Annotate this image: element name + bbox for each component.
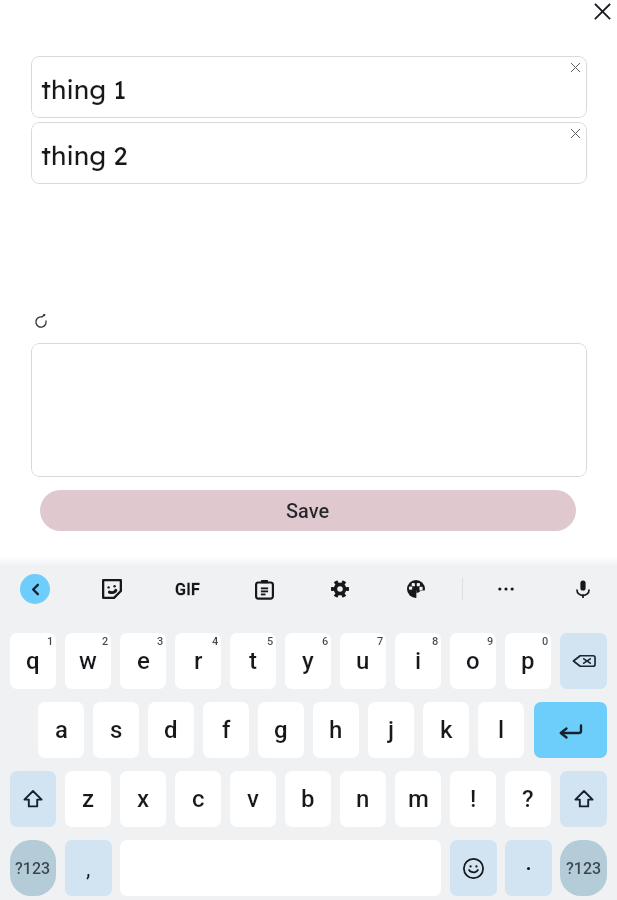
button[interactable]: y bbox=[285, 633, 331, 689]
staticText: ! bbox=[470, 785, 477, 813]
button[interactable]: Settings bbox=[322, 571, 358, 607]
staticText: e bbox=[137, 647, 150, 675]
button[interactable]: q bbox=[10, 633, 56, 689]
staticText: x bbox=[137, 785, 150, 813]
button[interactable]: i bbox=[395, 633, 441, 689]
button[interactable]: Back bbox=[20, 574, 50, 604]
button[interactable]: o bbox=[450, 633, 496, 689]
button[interactable]: , bbox=[65, 840, 112, 896]
button[interactable]: Emoji bbox=[450, 840, 497, 896]
staticText: 1 bbox=[47, 635, 54, 648]
button[interactable]: k bbox=[423, 702, 469, 758]
staticText: 5 bbox=[267, 635, 274, 648]
button[interactable]: Save bbox=[40, 490, 576, 531]
staticText: 9 bbox=[487, 635, 494, 648]
staticText: c bbox=[192, 785, 205, 813]
button[interactable]: v bbox=[230, 771, 276, 827]
staticText: ?123 bbox=[15, 859, 51, 878]
button[interactable]: ?123 bbox=[560, 840, 607, 896]
button[interactable]: Stickers bbox=[94, 571, 130, 607]
staticText: a bbox=[55, 716, 68, 744]
staticText: z bbox=[82, 785, 95, 813]
button[interactable]: u bbox=[340, 633, 386, 689]
staticText: 6 bbox=[322, 635, 329, 648]
button[interactable]: s bbox=[93, 702, 139, 758]
button[interactable]: m bbox=[395, 771, 441, 827]
button[interactable]: c bbox=[175, 771, 221, 827]
button[interactable]: g bbox=[258, 702, 304, 758]
button[interactable]: Remove bbox=[567, 59, 583, 75]
button[interactable]: l bbox=[478, 702, 524, 758]
staticText: thing 1 bbox=[41, 73, 127, 106]
staticText: , bbox=[86, 857, 91, 880]
staticText: l bbox=[498, 716, 505, 744]
staticText: 4 bbox=[212, 635, 219, 648]
button[interactable]: More options bbox=[488, 571, 524, 607]
staticText: u bbox=[356, 647, 370, 675]
button[interactable] bbox=[31, 343, 587, 477]
button[interactable]: ?123 bbox=[10, 840, 56, 896]
staticText: thing 2 bbox=[41, 139, 128, 172]
button[interactable]: f bbox=[203, 702, 249, 758]
button[interactable]: t bbox=[230, 633, 276, 689]
button[interactable]: Backspace bbox=[560, 633, 607, 689]
staticText: p bbox=[521, 647, 535, 675]
button[interactable]: Shift bbox=[560, 771, 607, 827]
staticText: o bbox=[466, 647, 480, 675]
button[interactable]: Close bbox=[590, 0, 614, 23]
staticText: v bbox=[247, 785, 259, 813]
button[interactable]: r bbox=[175, 633, 221, 689]
staticText: g bbox=[274, 716, 288, 744]
button[interactable]: ! bbox=[450, 771, 496, 827]
button[interactable]: h bbox=[313, 702, 359, 758]
staticText: Save bbox=[286, 499, 330, 522]
button[interactable] bbox=[505, 840, 552, 896]
staticText: m bbox=[408, 785, 429, 813]
button[interactable]: x bbox=[120, 771, 166, 827]
button[interactable]: n bbox=[340, 771, 386, 827]
button[interactable]: Voice input bbox=[565, 571, 601, 607]
staticText: w bbox=[79, 647, 97, 675]
button[interactable]: Enter bbox=[534, 702, 607, 758]
button[interactable]: p bbox=[505, 633, 551, 689]
staticText: y bbox=[302, 647, 314, 675]
button[interactable]: Remove bbox=[567, 125, 583, 141]
staticText: ? bbox=[522, 785, 534, 813]
staticText: j bbox=[388, 716, 395, 744]
button[interactable]: w bbox=[65, 633, 111, 689]
staticText: d bbox=[164, 716, 178, 744]
button[interactable]: a bbox=[38, 702, 84, 758]
staticText: t bbox=[249, 647, 257, 675]
staticText: r bbox=[194, 647, 203, 675]
button[interactable]: b bbox=[285, 771, 331, 827]
staticText: k bbox=[440, 716, 453, 744]
staticText: f bbox=[222, 716, 231, 744]
staticText: GIF bbox=[175, 580, 201, 599]
staticText: 7 bbox=[377, 635, 384, 648]
staticText: b bbox=[301, 785, 315, 813]
button[interactable]: thing 1 bbox=[31, 56, 587, 118]
button[interactable]: d bbox=[148, 702, 194, 758]
staticText: ?123 bbox=[566, 859, 602, 878]
button[interactable]: Shift bbox=[10, 771, 56, 827]
button[interactable]: j bbox=[368, 702, 414, 758]
staticText: i bbox=[415, 647, 422, 675]
button[interactable]: thing 2 bbox=[31, 122, 587, 184]
staticText: 8 bbox=[432, 635, 439, 648]
staticText: q bbox=[26, 647, 40, 675]
button[interactable]: Theme bbox=[398, 571, 434, 607]
button[interactable]: ? bbox=[505, 771, 551, 827]
staticText: n bbox=[356, 785, 370, 813]
button[interactable]: e bbox=[120, 633, 166, 689]
button[interactable]: Clipboard bbox=[246, 571, 282, 607]
button[interactable]: Refresh bbox=[31, 312, 51, 332]
staticText: 0 bbox=[542, 635, 549, 648]
staticText: s bbox=[110, 716, 123, 744]
button[interactable]: z bbox=[65, 771, 111, 827]
staticText: 2 bbox=[102, 635, 109, 648]
button[interactable]: GIF bbox=[168, 575, 208, 603]
staticText: h bbox=[329, 716, 343, 744]
staticText: 3 bbox=[157, 635, 164, 648]
